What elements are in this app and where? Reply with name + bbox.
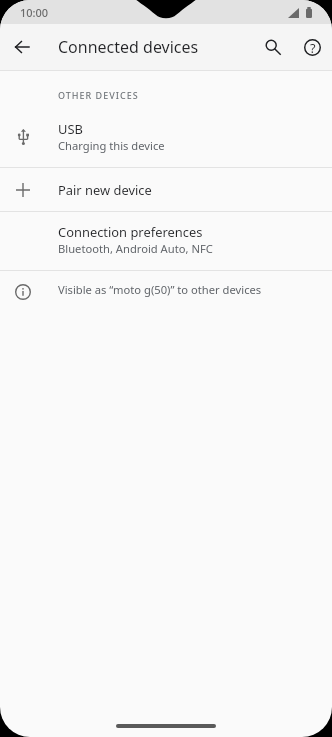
staticText: Connected devices: [58, 36, 199, 58]
button[interactable]: Help: [292, 27, 332, 67]
button[interactable]: Search: [252, 27, 292, 67]
staticText: Charging this device: [58, 138, 165, 153]
button[interactable]: Connection preferences: [0, 212, 332, 270]
staticText: 10:00: [20, 5, 49, 20]
staticText: Visible as “moto g(50)” to other devices: [58, 282, 262, 297]
button[interactable]: USB: [0, 111, 332, 167]
staticText: Connection preferences: [58, 223, 203, 241]
button[interactable]: Pair new device: [0, 168, 332, 211]
staticText: Bluetooth, Android Auto, NFC: [58, 241, 213, 256]
staticText: ?: [310, 39, 316, 56]
button[interactable]: Back: [2, 27, 42, 67]
staticText: OTHER DEVICES: [58, 89, 139, 101]
staticText: USB: [58, 120, 83, 138]
staticText: Pair new device: [58, 181, 152, 199]
